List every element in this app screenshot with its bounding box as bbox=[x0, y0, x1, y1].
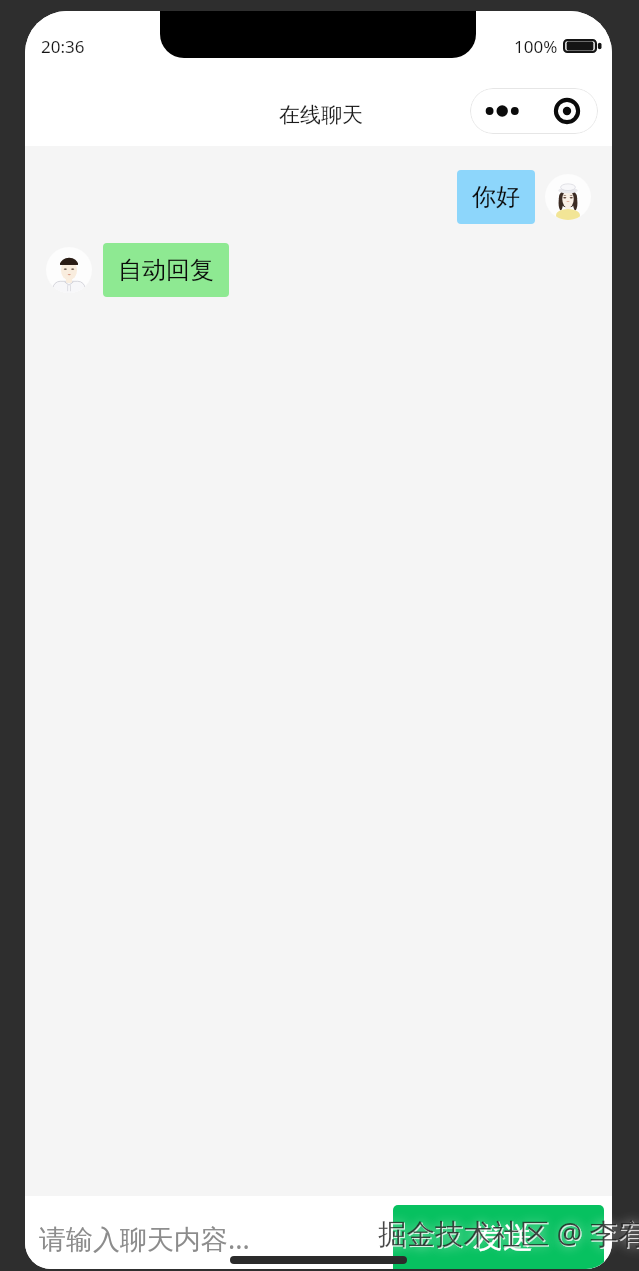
button[interactable]: 你好 bbox=[457, 170, 535, 224]
staticText: 掘金技术社区 @ 李宥 bbox=[378, 1214, 639, 1253]
button[interactable]: More and close bbox=[470, 88, 598, 134]
button[interactable]: 发送 bbox=[393, 1205, 604, 1269]
button[interactable]: 请输入聊天内容... bbox=[39, 1220, 250, 1257]
staticText: 发送 bbox=[473, 1219, 533, 1257]
staticText: 20:36 bbox=[41, 35, 85, 58]
button[interactable]: My avatar bbox=[545, 174, 591, 220]
button[interactable]: Contact avatar bbox=[46, 247, 92, 293]
button[interactable]: 自动回复 bbox=[103, 243, 229, 297]
staticText: 在线聊天 bbox=[279, 102, 363, 128]
staticText: 你好 bbox=[472, 182, 520, 212]
staticText: 掘金技术社区 @ 李宥 bbox=[379, 1215, 639, 1254]
staticText: 自动回复 bbox=[118, 255, 214, 285]
staticText: 100% bbox=[514, 35, 558, 58]
